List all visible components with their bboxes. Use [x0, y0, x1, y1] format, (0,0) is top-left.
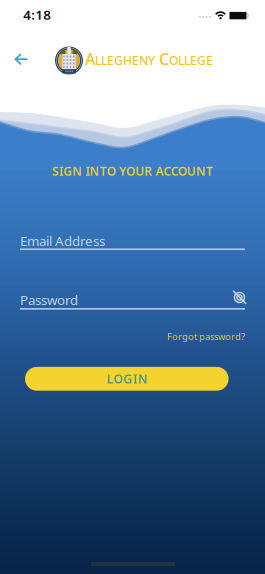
button[interactable]: Password — [20, 284, 245, 310]
button[interactable]: LOGIN — [25, 367, 228, 391]
staticText: OLLEGE — [169, 52, 213, 68]
button[interactable] — [15, 53, 29, 65]
staticText: A — [85, 48, 95, 69]
staticText: SIGN INTO YOUR ACCOUNT — [52, 163, 213, 179]
staticText: LLEGHENY — [95, 52, 155, 68]
staticText: Password — [20, 291, 78, 309]
staticText: Email Address — [20, 232, 105, 250]
staticText: Forgot password? — [167, 330, 245, 343]
staticText: LOGIN — [107, 371, 147, 387]
button[interactable] — [227, 287, 251, 307]
staticText: C — [155, 48, 169, 69]
button[interactable]: Forgot password? — [167, 330, 245, 343]
staticText: 4:18 — [23, 6, 51, 23]
button[interactable]: Email Address — [20, 224, 245, 250]
